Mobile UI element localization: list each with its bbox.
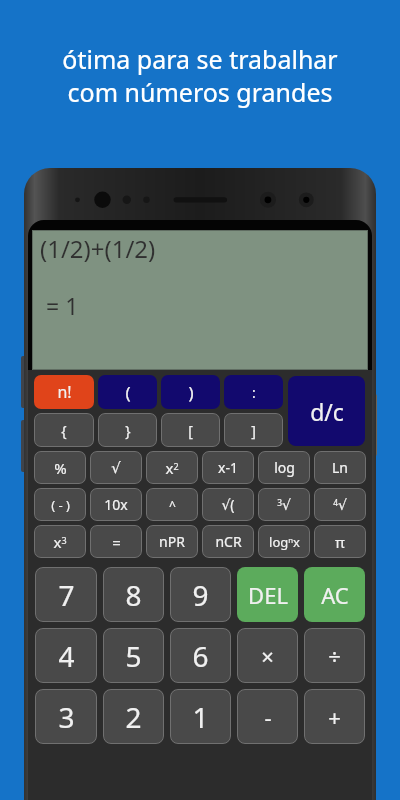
- button[interactable]: AC: [304, 567, 365, 622]
- button[interactable]: x3: [34, 525, 86, 558]
- button[interactable]: √(: [202, 488, 254, 521]
- staticText: ÷: [328, 641, 341, 671]
- staticText: DEL: [248, 580, 288, 610]
- button[interactable]: +: [304, 689, 365, 744]
- staticText: }: [125, 421, 131, 440]
- button[interactable]: 5: [103, 628, 164, 683]
- staticText: n!: [57, 381, 72, 403]
- staticText: {: [61, 421, 67, 440]
- staticText: 3: [58, 698, 75, 736]
- button[interactable]: 2: [103, 689, 164, 744]
- button[interactable]: -: [237, 689, 298, 744]
- button[interactable]: d/c: [288, 376, 365, 446]
- staticText: :: [252, 383, 256, 402]
- button[interactable]: n!: [34, 375, 94, 409]
- staticText: =: [112, 532, 121, 552]
- staticText: 6: [192, 637, 209, 675]
- button[interactable]: 6: [170, 628, 231, 683]
- button[interactable]: ): [161, 375, 220, 409]
- staticText: +: [328, 702, 341, 732]
- staticText: [: [188, 421, 193, 440]
- button[interactable]: nCR: [202, 525, 254, 558]
- button[interactable]: 3: [35, 689, 97, 744]
- button[interactable]: √: [90, 451, 142, 484]
- staticText: -: [264, 702, 272, 732]
- button[interactable]: DEL: [237, 567, 298, 622]
- staticText: x-1: [218, 458, 238, 477]
- button[interactable]: 3√: [258, 488, 310, 521]
- button[interactable]: x-1: [202, 451, 254, 484]
- staticText: nPR: [159, 532, 185, 551]
- button[interactable]: 4√: [314, 488, 366, 521]
- staticText: 4√: [333, 497, 347, 513]
- button[interactable]: x2: [146, 451, 198, 484]
- staticText: ( - ): [51, 496, 70, 514]
- staticText: log: [274, 458, 295, 477]
- button[interactable]: nPR: [146, 525, 198, 558]
- staticText: 10x: [104, 495, 128, 514]
- button[interactable]: ÷: [304, 628, 365, 683]
- staticText: 5: [125, 637, 142, 675]
- button[interactable]: [: [161, 413, 220, 447]
- staticText: ]: [251, 421, 256, 440]
- button[interactable]: 9: [170, 567, 231, 622]
- staticText: 3√: [277, 497, 291, 513]
- button[interactable]: lognx: [258, 525, 310, 558]
- staticText: AC: [321, 580, 349, 610]
- button[interactable]: 8: [103, 567, 164, 622]
- staticText: 4: [58, 637, 75, 675]
- staticText: π: [335, 532, 345, 552]
- staticText: (1/2)+(1/2): [40, 232, 156, 265]
- staticText: x3: [53, 532, 67, 552]
- button[interactable]: 10x: [90, 488, 142, 521]
- staticText: 7: [58, 576, 75, 614]
- button[interactable]: (: [98, 375, 157, 409]
- staticText: = 1: [46, 290, 79, 321]
- staticText: (: [125, 381, 131, 404]
- staticText: 1: [192, 698, 209, 736]
- button[interactable]: ^: [146, 488, 198, 521]
- button[interactable]: ]: [224, 413, 283, 447]
- staticText: ótima para se trabalhar com números gran…: [0, 42, 400, 109]
- staticText: ^: [169, 497, 176, 513]
- staticText: 2: [125, 698, 142, 736]
- staticText: 9: [192, 576, 209, 614]
- button[interactable]: ×: [237, 628, 298, 683]
- button[interactable]: log: [258, 451, 310, 484]
- button[interactable]: {: [34, 413, 94, 447]
- button[interactable]: %: [34, 451, 86, 484]
- staticText: ): [188, 381, 194, 404]
- button[interactable]: π: [314, 525, 366, 558]
- button[interactable]: 1: [170, 689, 231, 744]
- button[interactable]: ( - ): [34, 488, 86, 521]
- staticText: %: [54, 458, 67, 478]
- button[interactable]: Ln: [314, 451, 366, 484]
- button[interactable]: =: [90, 525, 142, 558]
- staticText: √: [111, 459, 121, 476]
- staticText: 8: [125, 576, 142, 614]
- button[interactable]: :: [224, 375, 283, 409]
- staticText: lognx: [269, 533, 300, 551]
- button[interactable]: 7: [35, 567, 97, 622]
- staticText: nCR: [215, 532, 242, 551]
- button[interactable]: 4: [35, 628, 97, 683]
- staticText: Ln: [332, 458, 348, 477]
- staticText: d/c: [310, 396, 344, 427]
- staticText: x2: [165, 458, 179, 478]
- staticText: ×: [261, 641, 274, 671]
- staticText: √(: [221, 495, 235, 514]
- button[interactable]: }: [98, 413, 157, 447]
